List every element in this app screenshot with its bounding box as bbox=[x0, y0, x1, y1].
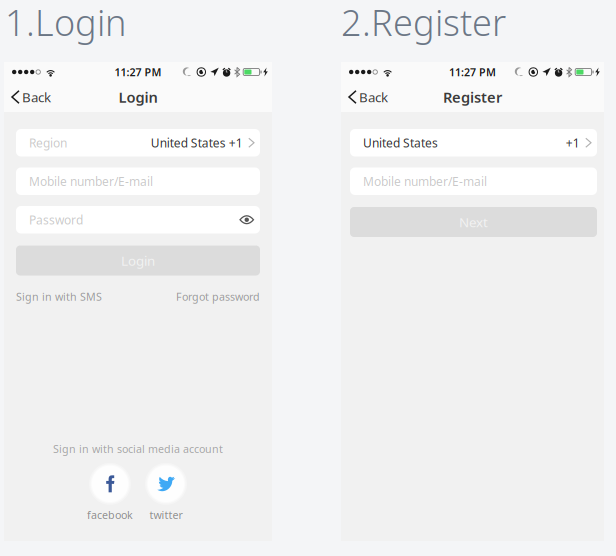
staticText: Next bbox=[459, 213, 488, 231]
staticText: Password bbox=[29, 212, 83, 228]
staticText: Back bbox=[359, 88, 388, 106]
button[interactable]: Show password bbox=[239, 214, 254, 226]
staticText: 11:27 PM bbox=[449, 65, 496, 79]
staticText: Back bbox=[22, 88, 51, 106]
button[interactable]: Region bbox=[16, 129, 260, 156]
staticText: twitter bbox=[149, 508, 182, 522]
button[interactable]: facebook bbox=[82, 467, 138, 522]
staticText: 1.Login bbox=[5, 0, 126, 46]
staticText: Region bbox=[29, 135, 67, 151]
staticText: 2.Register bbox=[341, 0, 506, 46]
button[interactable]: twitter bbox=[138, 467, 194, 522]
staticText: Login bbox=[118, 87, 157, 107]
button[interactable]: United States bbox=[350, 129, 597, 156]
staticText: Mobile number/E-mail bbox=[363, 173, 487, 189]
button[interactable]: Back bbox=[341, 82, 398, 112]
staticText: United States bbox=[363, 135, 438, 151]
staticText: Sign in with SMS bbox=[16, 289, 102, 304]
staticText: Sign in with social media account bbox=[53, 442, 223, 456]
button[interactable]: Forgot password bbox=[176, 289, 260, 304]
staticText: facebook bbox=[87, 508, 133, 522]
staticText: Forgot password bbox=[176, 289, 260, 304]
staticText: 11:27 PM bbox=[114, 65, 161, 79]
button[interactable]: Sign in with SMS bbox=[16, 289, 102, 304]
button[interactable]: Back bbox=[4, 82, 61, 112]
staticText: Login bbox=[121, 252, 155, 269]
staticText: +1 bbox=[566, 135, 580, 151]
staticText: Mobile number/E-mail bbox=[29, 173, 153, 189]
staticText: Register bbox=[443, 87, 502, 107]
staticText: United States +1 bbox=[151, 135, 243, 151]
